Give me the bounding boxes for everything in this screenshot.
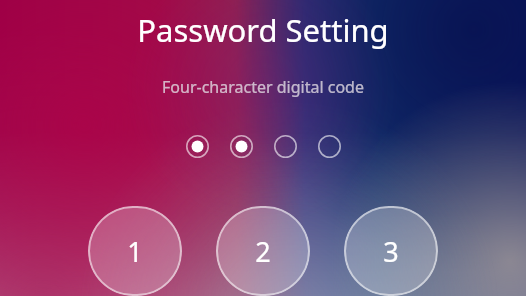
button[interactable]: Digit 2 — [216, 206, 310, 296]
staticText: Four-character digital code — [0, 76, 526, 98]
button[interactable]: Digit 1 — [88, 206, 182, 296]
staticText: 1 — [127, 233, 143, 270]
button[interactable] — [274, 135, 297, 158]
staticText: Password Setting — [0, 9, 526, 51]
staticText: 3 — [383, 233, 399, 270]
button[interactable] — [318, 135, 341, 158]
button[interactable] — [230, 135, 253, 158]
button[interactable]: Digit 3 — [344, 206, 438, 296]
button[interactable] — [186, 135, 209, 158]
staticText: 2 — [255, 233, 271, 270]
